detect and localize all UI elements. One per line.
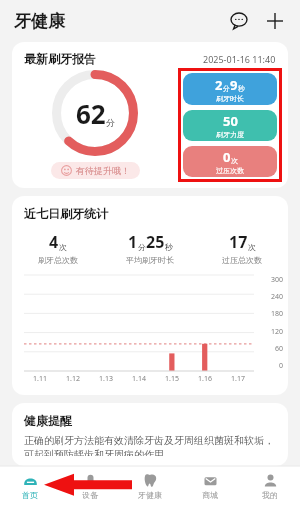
staticText: 240 <box>271 292 284 302</box>
button[interactable]: 我的 <box>240 466 300 507</box>
staticText: 正确的刷牙方法能有效清除牙齿及牙周组织菌斑和软垢，可起到预防龋齿和牙周病的作用。 <box>24 434 276 456</box>
staticText: 62 <box>76 96 106 131</box>
button[interactable]: 商城 <box>180 466 240 507</box>
button[interactable]: 17 <box>196 231 288 265</box>
staticText: 次 <box>248 242 256 252</box>
button[interactable]: Add <box>262 8 288 34</box>
staticText: 近七日刷牙统计 <box>24 206 108 221</box>
staticText: 17 <box>229 231 248 253</box>
staticText: 秒 <box>238 84 245 93</box>
staticText: 平均刷牙时长 <box>126 255 174 265</box>
staticText: 次 <box>231 156 238 165</box>
button[interactable]: 4 <box>12 231 104 265</box>
button[interactable]: 0 <box>183 146 277 177</box>
button[interactable]: 50 <box>183 110 277 141</box>
staticText: 分 <box>223 84 230 93</box>
staticText: 分 <box>106 117 115 128</box>
staticText: 0 <box>279 361 284 371</box>
staticText: 25 <box>146 231 165 253</box>
staticText: 健康提醒 <box>24 413 72 428</box>
button[interactable]: 有待提升哦！ <box>61 165 130 176</box>
staticText: 0 <box>223 148 231 166</box>
staticText: 商城 <box>202 490 218 500</box>
button[interactable]: 2 <box>183 73 277 105</box>
staticText: 设备 <box>82 490 98 500</box>
staticText: 最新刷牙报告 <box>24 51 96 66</box>
staticText: 首页 <box>22 490 38 500</box>
button[interactable]: 设备 <box>60 466 120 507</box>
staticText: 1 <box>128 231 138 253</box>
button[interactable]: 牙健康 <box>120 466 180 507</box>
staticText: 过压次数 <box>216 166 244 175</box>
button[interactable]: Messages <box>226 8 252 34</box>
staticText: 50 <box>223 112 238 130</box>
staticText: 1.15 <box>165 374 179 384</box>
staticText: 牙健康 <box>138 490 162 500</box>
staticText: 刷牙时长 <box>216 94 244 103</box>
staticText: 2025-01-16 11:40 <box>203 53 276 65</box>
staticText: 180 <box>271 309 284 319</box>
staticText: 分 <box>138 242 146 252</box>
staticText: 1.13 <box>99 374 113 384</box>
staticText: 120 <box>271 327 284 337</box>
staticText: 1.17 <box>231 374 245 384</box>
staticText: 我的 <box>262 490 278 500</box>
staticText: 9 <box>230 76 238 94</box>
staticText: 1.16 <box>198 374 212 384</box>
staticText: 过压总次数 <box>222 255 262 265</box>
staticText: 刷牙总次数 <box>38 255 78 265</box>
staticText: 300 <box>271 275 284 285</box>
staticText: 秒 <box>165 242 173 252</box>
staticText: 有待提升哦！ <box>76 165 130 176</box>
button[interactable]: 首页 <box>0 466 60 507</box>
staticText: 1.12 <box>66 374 80 384</box>
staticText: 1.11 <box>33 374 47 384</box>
staticText: 1.14 <box>132 374 146 384</box>
staticText: 刷牙力度 <box>216 130 244 139</box>
button[interactable]: 1 <box>104 231 196 265</box>
staticText: 4 <box>49 231 59 253</box>
staticText: 牙健康 <box>14 11 65 32</box>
staticText: 60 <box>275 344 284 354</box>
staticText: 次 <box>59 242 67 252</box>
staticText: 2 <box>215 76 223 94</box>
